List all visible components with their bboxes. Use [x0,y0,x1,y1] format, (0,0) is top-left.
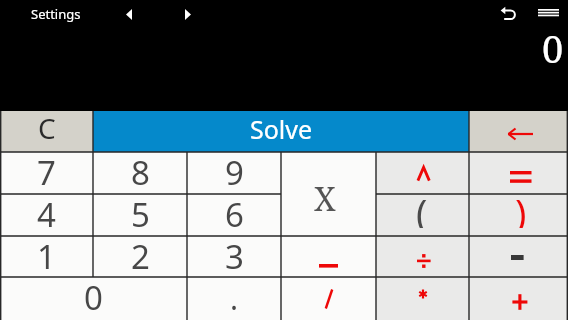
staticText: 1 [37,234,56,275]
button[interactable]: 9 [187,152,281,194]
button[interactable]: 3 [187,236,281,277]
button[interactable] [178,4,198,24]
staticText: 0 [84,275,103,318]
button[interactable] [496,2,520,26]
staticText: 2 [131,234,150,275]
button[interactable]: 7 [0,152,93,194]
button[interactable] [281,277,376,320]
button[interactable]: 4 [0,194,93,236]
button[interactable]: Settings [26,3,86,25]
staticText: Solve [250,112,313,146]
staticText: ) [515,186,527,228]
staticText: 6 [225,192,244,234]
button[interactable]: 8 [93,152,187,194]
button[interactable]: C [0,111,93,152]
button[interactable]: 0 [0,277,187,320]
button[interactable] [533,1,563,25]
button[interactable] [281,236,376,277]
button[interactable] [469,236,568,277]
button[interactable] [376,236,469,277]
button[interactable] [376,152,469,194]
button[interactable] [376,277,469,320]
staticText: Settings [31,5,81,23]
staticText: C [38,109,56,147]
staticText: X [314,176,336,221]
staticText: 3 [225,234,244,275]
button[interactable]: . [187,277,281,320]
staticText: 9 [225,150,244,192]
staticText: ( [416,186,428,228]
button[interactable]: X [281,152,376,236]
staticText: 7 [37,150,56,192]
staticText: 8 [131,150,150,192]
button[interactable]: 1 [0,236,93,277]
button[interactable]: 6 [187,194,281,236]
button[interactable]: 5 [93,194,187,236]
button[interactable]: 2 [93,236,187,277]
button[interactable] [469,111,568,152]
button[interactable]: ( [376,194,469,236]
staticText: 0 [542,22,564,74]
button[interactable] [469,277,568,320]
staticText: 4 [37,192,56,234]
staticText: . [230,278,239,319]
button[interactable]: ) [469,194,568,236]
button[interactable] [119,4,139,24]
staticText: 5 [131,192,150,234]
button[interactable] [469,152,568,194]
button[interactable]: Solve [93,111,469,152]
